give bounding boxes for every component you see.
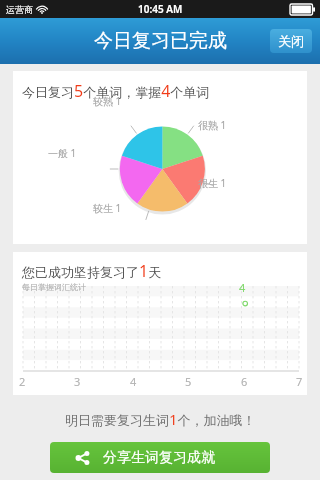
- button[interactable]: 分享生词复习成就: [50, 442, 270, 473]
- staticText: 明日需要复习生词1个，加油哦！: [65, 409, 256, 429]
- staticText: 一般 1: [48, 146, 77, 160]
- staticText: 今日复习5个单词，掌握4个单词: [22, 80, 210, 102]
- staticText: 分享生词复习成就: [103, 449, 215, 467]
- staticText: 很熟 1: [198, 118, 227, 132]
- staticText: 6: [241, 374, 248, 389]
- button[interactable]: 关闭: [270, 29, 312, 53]
- staticText: 7: [296, 374, 303, 389]
- staticText: 2: [19, 374, 26, 389]
- staticText: 今日复习已完成: [94, 29, 227, 53]
- staticText: 4: [239, 280, 246, 295]
- staticText: 5: [185, 374, 192, 389]
- staticText: 较熟 1: [93, 94, 122, 108]
- staticText: 10:45 AM: [138, 2, 183, 16]
- staticText: 很生 1: [198, 176, 227, 190]
- staticText: 3: [74, 374, 81, 389]
- staticText: 您已成功坚持复习了1天: [22, 260, 162, 282]
- staticText: 4: [130, 374, 137, 389]
- staticText: 每日掌握词汇统计: [22, 282, 86, 292]
- staticText: 运营商: [6, 4, 33, 15]
- staticText: 较生 1: [93, 201, 122, 215]
- staticText: 关闭: [278, 33, 304, 49]
